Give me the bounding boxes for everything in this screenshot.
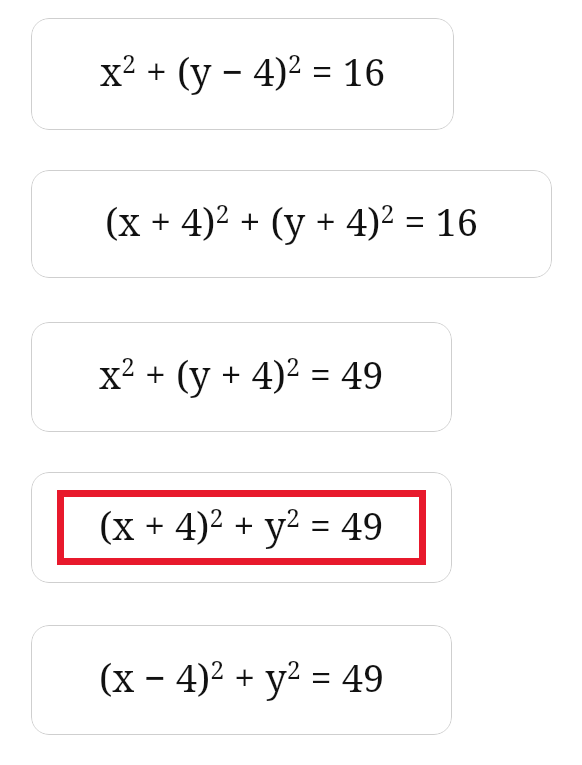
button[interactable]: Selected option: x plus 4 squared plus y… <box>31 472 452 583</box>
button[interactable]: Option: x plus 4 squared plus y plus 4 s… <box>31 170 552 278</box>
staticText: x2 + (y − 4)2 = 16 <box>100 45 386 97</box>
button[interactable]: Option: x minus 4 squared plus y squared… <box>31 625 452 735</box>
staticText: x2 + (y + 4)2 = 49 <box>99 348 384 400</box>
button[interactable]: Option: x squared plus y minus 4 squared… <box>31 18 454 130</box>
staticText: (x − 4)2 + y2 = 49 <box>99 651 385 703</box>
staticText: (x + 4)2 + (y + 4)2 = 16 <box>105 195 478 247</box>
staticText: (x + 4)2 + y2 = 49 <box>99 499 384 551</box>
button[interactable]: Option: x squared plus y plus 4 squared … <box>31 322 452 432</box>
